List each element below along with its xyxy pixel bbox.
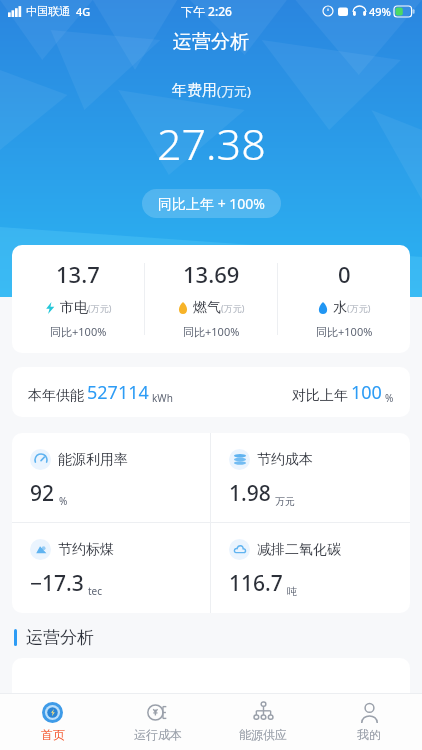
staticText: 同比+100% <box>316 324 373 339</box>
staticText: 13.7 <box>56 259 100 289</box>
button[interactable]: 能源利用率 <box>12 433 210 522</box>
staticText: 527114 <box>87 380 149 405</box>
button[interactable]: 节约标煤 <box>12 523 210 613</box>
staticText: (万元) <box>347 302 371 314</box>
staticText: 运营分析 <box>26 627 94 648</box>
staticText: −17.3 <box>30 569 84 598</box>
staticText: 节约成本 <box>257 451 313 469</box>
staticText: 吨 <box>287 585 297 598</box>
staticText: kWh <box>152 391 173 405</box>
staticText: (万元) <box>88 302 112 314</box>
staticText: 同比+100% <box>183 324 240 339</box>
staticText: (万元) <box>221 302 245 314</box>
staticText: 年费用 <box>172 81 217 100</box>
staticText: 燃气 <box>193 299 221 317</box>
staticText: tec <box>88 584 103 598</box>
staticText: 能源利用率 <box>58 451 128 469</box>
staticText: % <box>385 391 394 405</box>
staticText: 中国联通 <box>26 4 70 18</box>
button[interactable]: 运行成本 <box>105 694 210 750</box>
staticText: 减排二氧化碳 <box>257 541 341 559</box>
staticText: 运营分析 <box>173 30 249 54</box>
staticText: 对比上年 <box>292 387 348 405</box>
staticText: 本年供能 <box>28 387 84 405</box>
staticText: 116.7 <box>229 569 283 598</box>
button[interactable]: 我的 <box>316 694 422 750</box>
staticText: 万元 <box>275 495 295 508</box>
staticText: 节约标煤 <box>58 541 114 559</box>
staticText: 100 <box>351 380 382 405</box>
staticText: 92 <box>30 479 55 508</box>
button[interactable]: 首页 <box>0 694 105 750</box>
staticText: 水 <box>333 299 347 317</box>
staticText: 27.38 <box>157 114 266 173</box>
button[interactable]: 0 <box>278 245 410 353</box>
staticText: 我的 <box>357 727 381 742</box>
staticText: 49% <box>369 4 391 19</box>
staticText: (万元) <box>217 82 251 100</box>
button[interactable]: 能源供应 <box>210 694 316 750</box>
button[interactable]: 13.7 <box>12 245 144 353</box>
button[interactable]: 同比上年 + 100% <box>142 189 281 218</box>
staticText: 1.98 <box>229 479 271 508</box>
button[interactable]: 本年供能 <box>12 367 410 417</box>
staticText: 运行成本 <box>134 727 182 742</box>
staticText: 下午 2:26 <box>181 3 232 19</box>
staticText: 4G <box>76 4 91 19</box>
staticText: 0 <box>338 259 351 289</box>
staticText: 13.69 <box>183 259 240 289</box>
button[interactable]: 13.69 <box>145 245 277 353</box>
staticText: % <box>59 494 68 508</box>
staticText: 首页 <box>41 727 65 742</box>
staticText: 能源供应 <box>239 727 287 742</box>
staticText: 市电 <box>60 299 88 317</box>
staticText: 同比上年 + 100% <box>158 194 265 213</box>
button[interactable]: 节约成本 <box>211 433 410 522</box>
staticText: 同比+100% <box>50 324 107 339</box>
button[interactable]: 减排二氧化碳 <box>211 523 410 613</box>
